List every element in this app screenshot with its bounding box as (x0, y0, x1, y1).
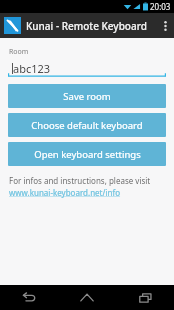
staticText: www.kunai-keyboard.net/info (9, 187, 121, 198)
staticText: abc123 (13, 61, 51, 76)
staticText: Room (9, 47, 29, 57)
staticText: For infos and instructions, please visit (9, 175, 151, 186)
staticText: Choose default keyboard (31, 119, 143, 132)
button[interactable]: Open keyboard settings (8, 142, 166, 166)
button[interactable]: Back (0, 285, 58, 310)
staticText: Kunai - Remote Keyboard (26, 19, 147, 33)
button[interactable]: Save room (8, 84, 166, 108)
staticText: 20:03 (150, 1, 171, 12)
button[interactable]: More options (156, 13, 174, 38)
button[interactable]: Home (58, 285, 116, 310)
staticText: Save room (63, 90, 111, 103)
button[interactable]: abc123 (8, 60, 166, 77)
button[interactable]: Choose default keyboard (8, 113, 166, 137)
button[interactable]: www.kunai-keyboard.net/info (9, 187, 121, 198)
staticText: Open keyboard settings (34, 148, 141, 161)
button[interactable]: Recent apps (116, 285, 174, 310)
